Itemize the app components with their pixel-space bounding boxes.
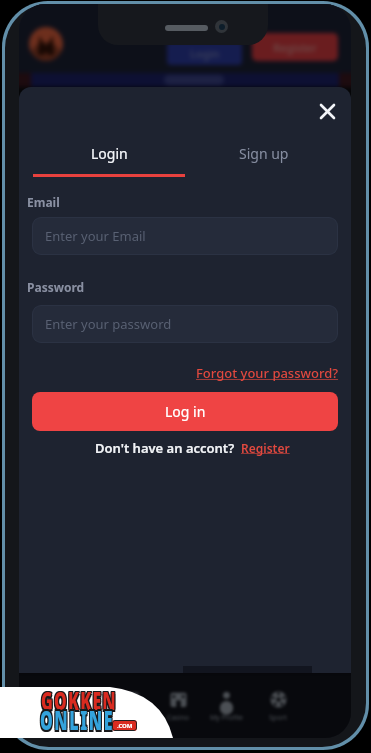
staticText: Sport bbox=[269, 713, 287, 723]
staticText: Password bbox=[27, 279, 85, 295]
button[interactable]: Login bbox=[33, 139, 185, 167]
button[interactable]: Casino bbox=[159, 690, 197, 723]
staticText: Login bbox=[190, 46, 220, 61]
staticText: Email bbox=[27, 194, 60, 210]
button[interactable]: Casino bbox=[111, 690, 149, 723]
staticText: Don't have an accont? bbox=[95, 439, 241, 457]
staticText: ONLINE bbox=[39, 700, 114, 736]
staticText: Login bbox=[91, 144, 128, 163]
staticText: ONLINE bbox=[40, 703, 115, 740]
staticText: ONLINE bbox=[41, 700, 116, 736]
staticText: GOKKEN bbox=[40, 686, 116, 719]
button[interactable]: Forgot your password? bbox=[196, 364, 339, 382]
staticText: GOKKEN bbox=[41, 684, 117, 717]
button[interactable]: Sign up bbox=[185, 139, 343, 167]
button[interactable]: Register bbox=[241, 440, 290, 456]
staticText: GOKKEN bbox=[42, 686, 118, 719]
staticText: GOKKEN bbox=[41, 683, 117, 716]
staticText: GOKKEN bbox=[42, 683, 118, 716]
staticText: Casino bbox=[167, 713, 190, 723]
staticText: Register bbox=[273, 40, 317, 55]
button[interactable]: Login bbox=[167, 42, 242, 65]
staticText: GOKKEN bbox=[40, 684, 116, 717]
staticText: Enter your password bbox=[45, 315, 172, 333]
staticText: ONLINE bbox=[40, 700, 115, 736]
staticText: ONLINE bbox=[41, 702, 116, 738]
staticText: GOKKEN bbox=[42, 684, 118, 717]
button[interactable]: Enter your Email bbox=[32, 217, 338, 255]
button[interactable]: My Profile bbox=[207, 690, 245, 723]
staticText: .COM bbox=[117, 722, 133, 730]
button[interactable]: Enter your password bbox=[32, 305, 338, 343]
staticText: ONLINE bbox=[39, 702, 114, 738]
button[interactable] bbox=[315, 99, 339, 123]
staticText: ONLINE bbox=[40, 702, 115, 738]
staticText: My Profile bbox=[210, 713, 243, 723]
button[interactable]: Sport bbox=[259, 690, 297, 723]
staticText: GOKKEN bbox=[40, 683, 116, 716]
staticText: Log in bbox=[165, 402, 206, 421]
button[interactable]: Register bbox=[252, 33, 338, 61]
staticText: Sign up bbox=[239, 144, 289, 163]
staticText: Enter your Email bbox=[45, 227, 146, 245]
staticText: Casino bbox=[119, 713, 142, 723]
staticText: ONLINE bbox=[39, 703, 114, 740]
button[interactable]: Log in bbox=[32, 392, 338, 431]
staticText: ONLINE bbox=[41, 703, 116, 740]
staticText: GOKKEN bbox=[41, 686, 117, 719]
